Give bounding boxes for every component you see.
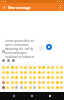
button[interactable] [14,70,18,74]
button[interactable] [14,85,18,89]
staticText: New message [8,5,31,10]
button[interactable] [59,75,63,79]
button[interactable] [59,65,63,69]
button[interactable] [23,65,27,69]
button[interactable] [50,65,54,69]
button[interactable] [41,80,45,84]
button[interactable] [32,70,36,74]
button[interactable] [1,70,5,74]
button[interactable] [23,85,27,89]
button[interactable] [32,85,36,89]
button[interactable] [23,75,27,79]
button[interactable] [14,65,18,69]
button[interactable]: Send [46,44,52,50]
button[interactable] [5,80,9,84]
button[interactable] [1,80,5,84]
button[interactable] [46,85,50,89]
button[interactable] [19,65,23,69]
button[interactable] [37,70,41,74]
button[interactable] [14,80,18,84]
button[interactable] [37,80,41,84]
button[interactable] [19,75,23,79]
button[interactable] [5,85,9,89]
button[interactable]: Tool [11,58,16,63]
button[interactable] [10,70,14,74]
staticText: Lorem ipsum dolor sit amet, consectetur … [5,39,37,59]
button[interactable] [10,80,14,84]
button[interactable] [28,85,32,89]
button[interactable] [59,70,63,74]
button[interactable] [23,70,27,74]
button[interactable] [1,85,5,89]
button[interactable] [19,70,23,74]
button[interactable] [10,75,14,79]
button[interactable] [55,75,59,79]
button[interactable]: More options [56,3,64,11]
button[interactable] [41,75,45,79]
button[interactable] [32,80,36,84]
button[interactable] [37,75,41,79]
button[interactable] [28,65,32,69]
button[interactable] [14,75,18,79]
button[interactable] [55,80,59,84]
button[interactable] [37,65,41,69]
button[interactable] [32,75,36,79]
button[interactable] [1,75,5,79]
button[interactable] [59,80,63,84]
button[interactable] [55,70,59,74]
button[interactable] [41,70,45,74]
button[interactable] [59,85,63,89]
button[interactable] [41,65,45,69]
button[interactable] [5,65,9,69]
button[interactable] [50,85,54,89]
button[interactable] [50,75,54,79]
button[interactable] [41,85,45,89]
button[interactable]: Back [0,3,8,11]
button[interactable] [1,65,5,69]
button[interactable] [55,65,59,69]
button[interactable] [50,80,54,84]
button[interactable]: Home [28,92,36,100]
button[interactable]: Tool [6,58,11,63]
button[interactable] [32,65,36,69]
button[interactable] [28,75,32,79]
button[interactable] [50,70,54,74]
button[interactable] [46,65,50,69]
button[interactable] [37,85,41,89]
button[interactable] [28,70,32,74]
button[interactable] [10,85,14,89]
button[interactable] [46,75,50,79]
button[interactable] [19,80,23,84]
button[interactable] [55,85,59,89]
button[interactable] [46,70,50,74]
button[interactable] [10,65,14,69]
button[interactable] [23,80,27,84]
button[interactable]: Back [10,92,18,100]
button[interactable]: Recents [46,92,54,100]
button[interactable]: Tool [1,58,6,63]
button[interactable] [5,70,9,74]
button[interactable] [5,75,9,79]
button[interactable] [28,80,32,84]
button[interactable] [19,85,23,89]
button[interactable] [46,80,50,84]
